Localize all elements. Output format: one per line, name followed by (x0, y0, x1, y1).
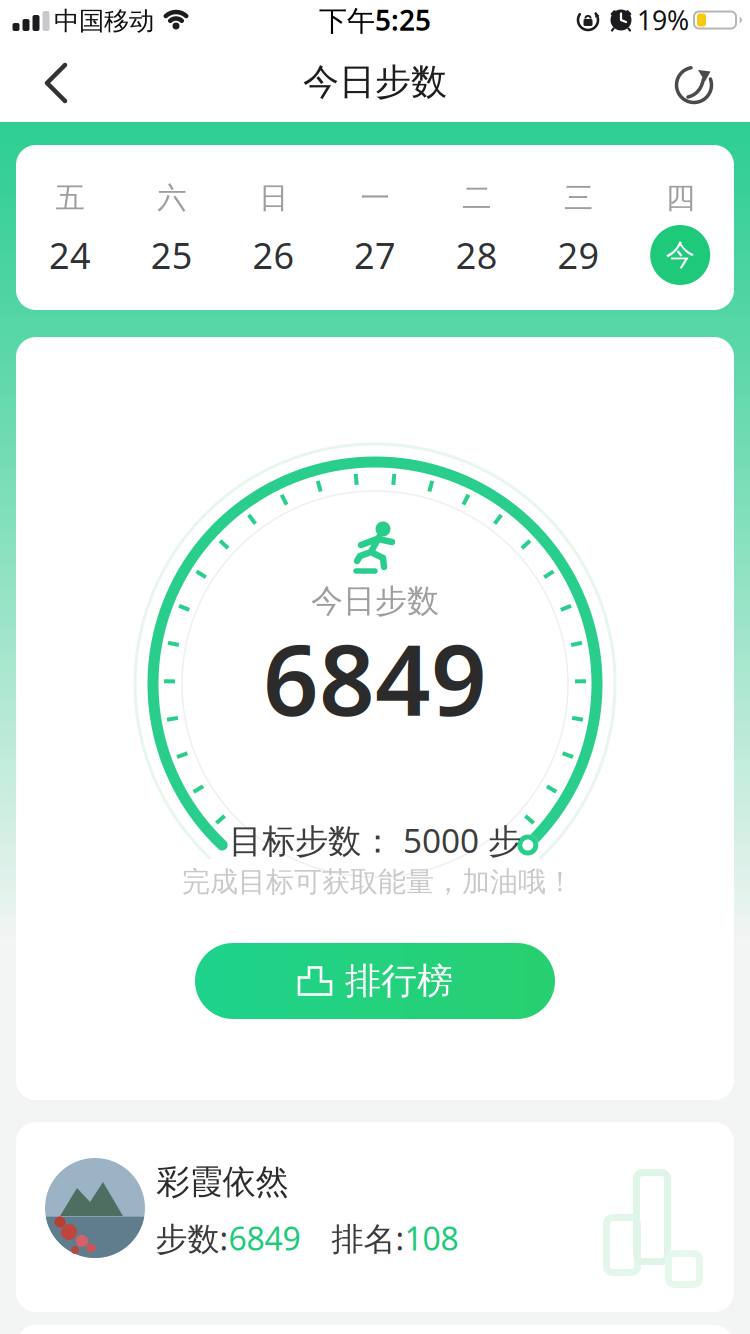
staticText: 下午5:25 (319, 1, 431, 39)
staticText: 排名: (331, 1217, 404, 1259)
button[interactable]: Refresh (670, 58, 720, 108)
staticText: 四 (666, 180, 695, 216)
staticText: 6849 (228, 1217, 300, 1259)
staticText: 6849 (263, 613, 487, 743)
staticText: 五 (55, 180, 84, 216)
staticText: 目标步数： 5000 步 (229, 818, 521, 862)
staticText: 108 (404, 1217, 458, 1259)
staticText: 28 (456, 231, 498, 279)
staticText: 25 (151, 231, 193, 279)
button[interactable]: 排行榜 (198, 943, 552, 1019)
staticText: 彩霞依然 (156, 1161, 288, 1202)
staticText: 今 (666, 237, 695, 273)
staticText: 中国移动 (54, 5, 154, 36)
staticText: 三 (564, 180, 593, 216)
staticText: 完成目标可获取能量，加油哦！ (182, 865, 574, 899)
staticText: 今日步数 (311, 581, 439, 621)
staticText: 日 (259, 180, 288, 216)
staticText: 二 (462, 180, 491, 216)
staticText: 19% (637, 2, 689, 38)
button[interactable]: 今天 (650, 225, 710, 285)
staticText: 一 (361, 180, 390, 216)
button[interactable]: Back (38, 59, 82, 107)
staticText: 排行榜 (345, 959, 453, 1003)
staticText: 27 (354, 231, 396, 279)
staticText: 今日步数 (303, 60, 447, 104)
staticText: 24 (49, 231, 91, 279)
staticText: 29 (557, 231, 599, 279)
staticText: 步数: (155, 1217, 228, 1259)
staticText: 六 (157, 180, 186, 216)
staticText: 26 (252, 231, 294, 279)
